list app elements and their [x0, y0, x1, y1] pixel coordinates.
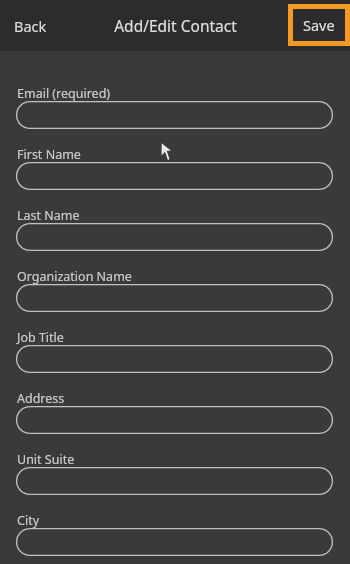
staticText: Job Title — [17, 329, 64, 346]
button[interactable]: Last Name — [16, 223, 333, 251]
staticText: City — [17, 512, 40, 529]
staticText: Add/Edit Contact — [114, 15, 237, 36]
button[interactable]: City — [16, 528, 333, 556]
button[interactable]: Job Title — [16, 345, 333, 373]
staticText: Organization Name — [17, 268, 132, 285]
staticText: Last Name — [17, 207, 80, 224]
staticText: Email (required) — [17, 85, 111, 102]
button[interactable]: Organization Name — [16, 284, 333, 312]
button[interactable]: Address — [16, 406, 333, 434]
staticText: Back — [14, 16, 47, 36]
button[interactable]: Back — [14, 0, 70, 51]
staticText: Save — [303, 15, 335, 35]
button[interactable]: Save — [288, 4, 350, 46]
button[interactable]: Unit Suite — [16, 467, 333, 495]
staticText: Unit Suite — [17, 451, 75, 468]
staticText: Address — [17, 390, 65, 407]
button[interactable]: Email (required) — [16, 101, 333, 129]
staticText: First Name — [17, 146, 81, 163]
button[interactable]: First Name — [16, 162, 333, 190]
